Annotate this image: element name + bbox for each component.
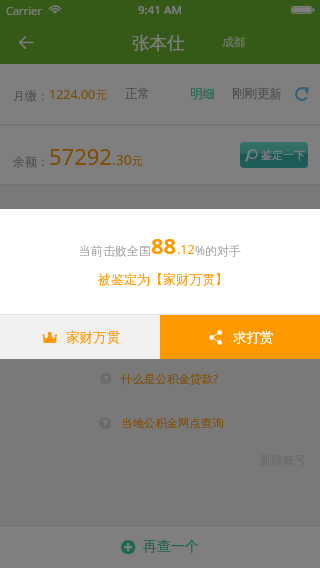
staticText: 9:41 AM	[138, 2, 182, 18]
staticText: 求打赏	[233, 329, 274, 346]
staticText: .12	[177, 241, 195, 258]
staticText: 明细	[190, 86, 215, 102]
staticText: 88	[151, 230, 177, 256]
staticText: 张本仕	[132, 32, 185, 54]
button[interactable]: Refresh	[288, 80, 315, 108]
staticText: 家财万贯	[66, 329, 120, 346]
button[interactable]: 鉴定一下	[240, 142, 308, 168]
button[interactable]: 再查一个	[0, 526, 320, 568]
staticText: 删除账号	[260, 453, 306, 467]
staticText: .30	[112, 150, 132, 169]
button[interactable]: 求打赏	[160, 315, 320, 359]
button[interactable]: ?	[0, 364, 320, 394]
staticText: 月缴：	[13, 88, 49, 103]
staticText: 元	[96, 88, 107, 102]
staticText: 当前击败全国	[79, 243, 151, 258]
staticText: 鉴定一下	[261, 148, 305, 162]
button[interactable]: 明细	[186, 82, 218, 106]
staticText: 再查一个	[143, 538, 199, 556]
staticText: 57292	[49, 141, 112, 171]
staticText: 什么是公积金贷款?	[121, 371, 218, 387]
button[interactable]: 删除账号	[255, 449, 311, 471]
button[interactable]: 家财万贯	[0, 315, 160, 359]
staticText: 正常	[125, 86, 150, 102]
staticText: %的对手	[195, 242, 241, 258]
button[interactable]: Back	[0, 20, 52, 64]
staticText: 被鉴定为【家财万贯】	[98, 271, 228, 287]
staticText: 刚刚更新	[232, 86, 282, 102]
staticText: Carrier	[6, 3, 42, 18]
staticText: 当地公积金网点查询	[121, 416, 224, 430]
button[interactable]: ?	[0, 408, 320, 438]
staticText: 余额：	[13, 154, 49, 169]
staticText: ?	[104, 373, 109, 385]
staticText: 1224.00	[49, 86, 96, 103]
staticText: 元	[132, 154, 143, 168]
staticText: 成都	[222, 35, 245, 49]
staticText: ?	[103, 417, 108, 429]
